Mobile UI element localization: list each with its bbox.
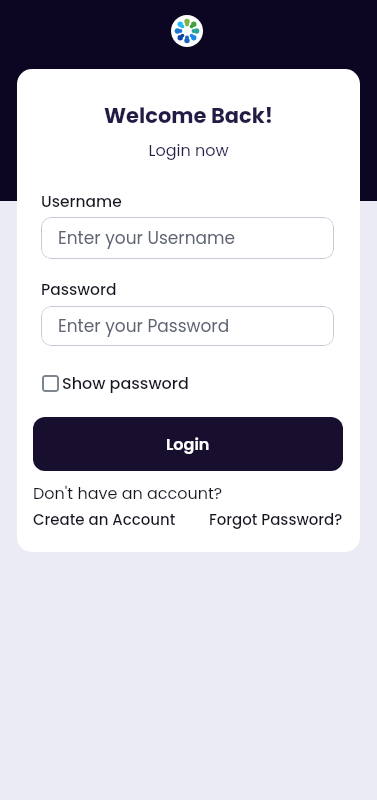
button[interactable] [171, 15, 203, 47]
staticText: Login [166, 433, 210, 455]
staticText: Show password [62, 372, 189, 394]
button[interactable]: Forgot Password? [209, 509, 343, 530]
staticText: Don't have an account? [33, 482, 223, 504]
button[interactable]: Enter your Username [41, 217, 334, 259]
button[interactable]: Show password [42, 372, 189, 394]
button[interactable]: Create an Account [33, 509, 176, 530]
staticText: Enter your Username [58, 226, 236, 250]
staticText: Welcome Back! [17, 101, 360, 130]
staticText: Login now [17, 139, 360, 161]
staticText: Enter your Password [58, 314, 230, 338]
button[interactable]: Enter your Password [41, 306, 334, 346]
staticText: Password [41, 279, 117, 301]
staticText: Username [41, 191, 122, 213]
button[interactable]: Login [33, 417, 343, 471]
